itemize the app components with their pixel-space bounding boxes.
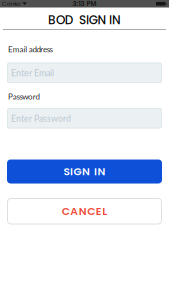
staticText: BOD SIGN IN	[48, 12, 121, 28]
staticText: 3:13 PM	[72, 0, 96, 8]
staticText: Email address	[8, 44, 53, 54]
staticText: Enter Email	[11, 67, 54, 78]
staticText: Enter Password	[11, 113, 71, 124]
staticText: CANCEL	[62, 204, 107, 219]
button[interactable]: SIGN IN	[7, 159, 162, 183]
staticText: Password	[8, 91, 40, 101]
button[interactable]: Enter Email	[7, 62, 162, 83]
button[interactable]: CANCEL	[7, 198, 162, 224]
staticText: Carrier	[2, 0, 21, 8]
button[interactable]: Enter Password	[7, 108, 162, 128]
staticText: SIGN IN	[63, 164, 105, 179]
